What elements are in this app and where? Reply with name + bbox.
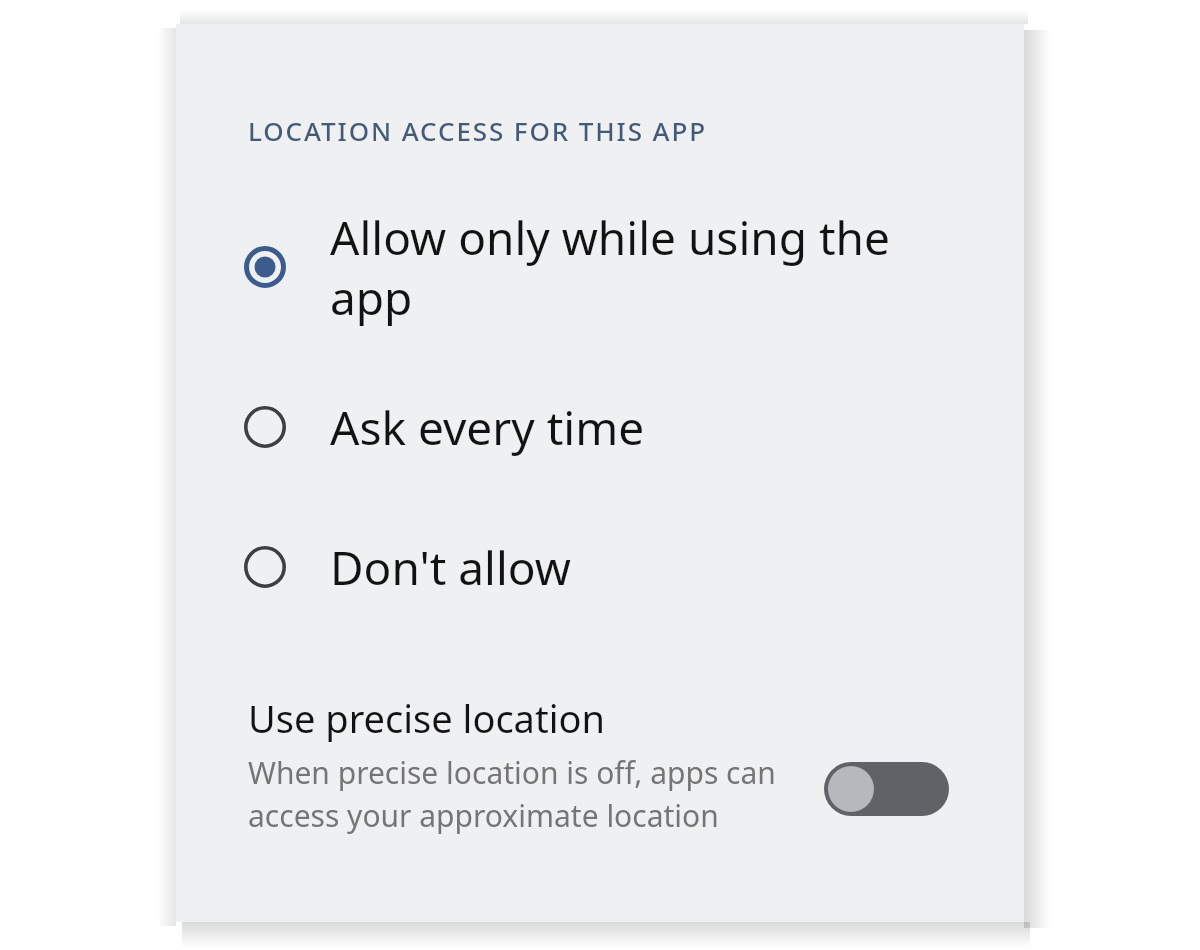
staticText: LOCATION ACCESS FOR THIS APP bbox=[248, 113, 708, 148]
button[interactable]: Don't allow bbox=[176, 512, 1024, 622]
staticText: Allow only while using the app bbox=[330, 206, 930, 329]
button[interactable]: Allow only while using the app bbox=[176, 196, 1024, 338]
staticText: When precise location is off, apps can a… bbox=[248, 752, 808, 836]
staticText: Ask every time bbox=[330, 396, 930, 459]
staticText: Don't allow bbox=[330, 536, 930, 599]
button[interactable]: Use precise location bbox=[176, 664, 1024, 914]
button[interactable]: Ask every time bbox=[176, 372, 1024, 482]
other: Use precise location toggle bbox=[824, 762, 949, 816]
staticText: Use precise location bbox=[248, 692, 605, 744]
